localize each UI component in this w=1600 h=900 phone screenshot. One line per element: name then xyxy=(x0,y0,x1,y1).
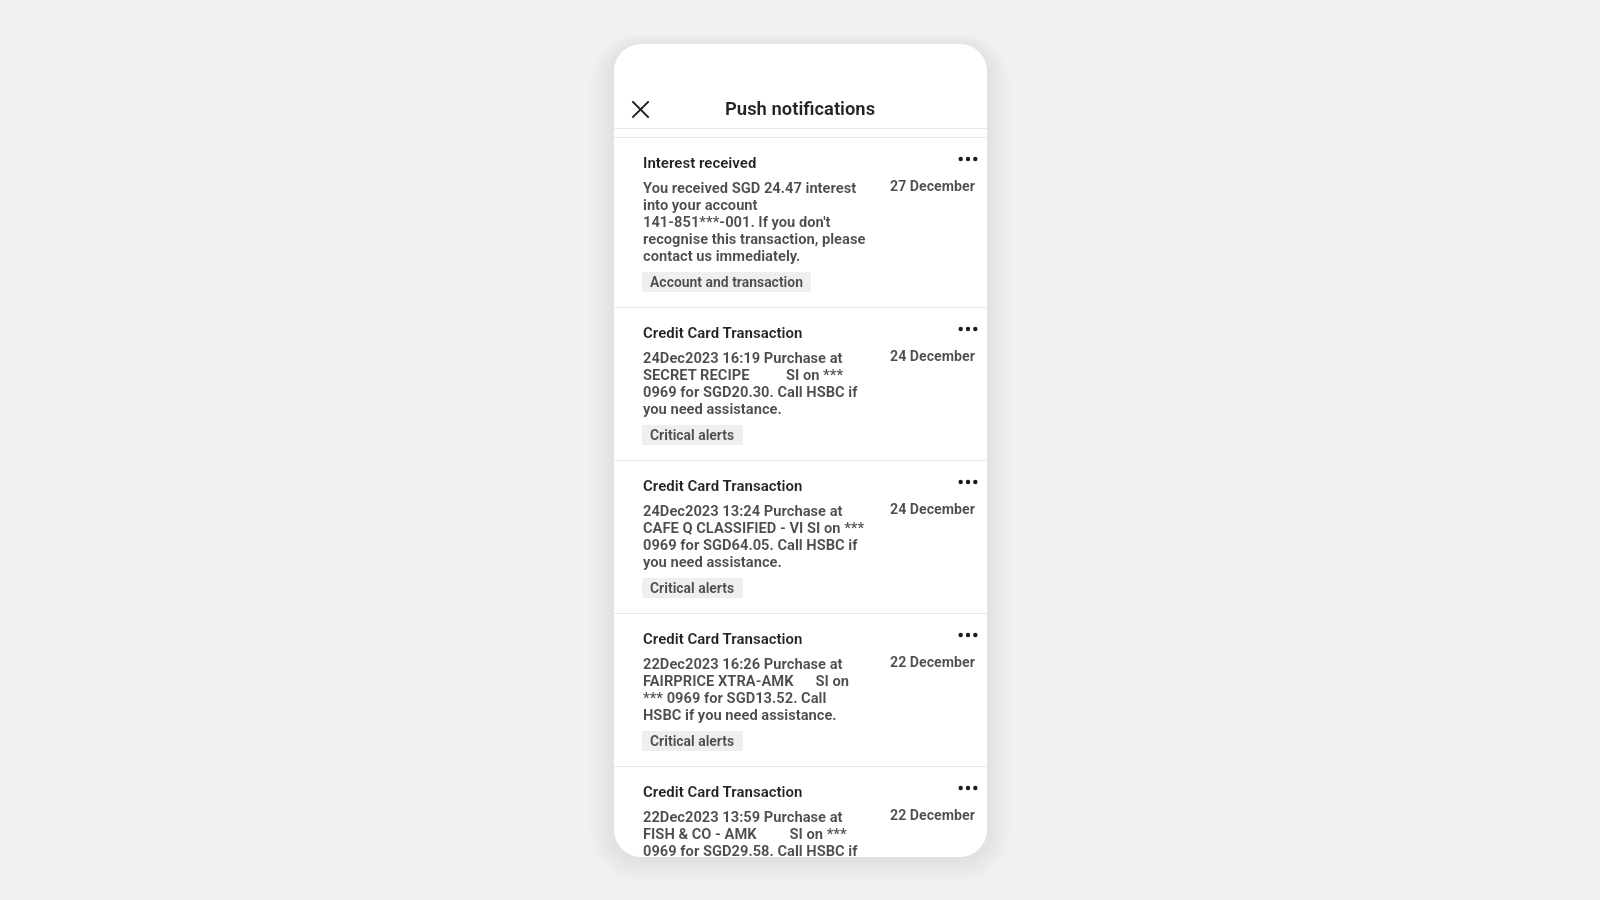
button[interactable]: More options xyxy=(955,775,981,801)
staticText: Interest received xyxy=(643,154,757,172)
button[interactable]: More options xyxy=(955,469,981,495)
button[interactable]: Credit Card Transaction xyxy=(614,308,987,460)
staticText: 24Dec2023 16:19 Purchase at SECRET RECIP… xyxy=(643,349,866,417)
staticText: Account and transaction xyxy=(650,274,803,290)
staticText: 24Dec2023 13:24 Purchase at CAFE Q CLASS… xyxy=(643,502,866,570)
button[interactable]: Interest received xyxy=(614,138,987,307)
staticText: 22Dec2023 16:26 Purchase at FAIRPRICE XT… xyxy=(643,655,866,723)
staticText: Critical alerts xyxy=(650,427,735,443)
button[interactable]: Credit Card Transaction xyxy=(614,767,987,857)
button[interactable]: More options xyxy=(955,146,981,172)
staticText: 22Dec2023 13:59 Purchase at FISH & CO - … xyxy=(643,808,866,857)
staticText: 27 December xyxy=(890,178,975,195)
button[interactable]: Credit Card Transaction xyxy=(614,614,987,766)
staticText: Credit Card Transaction xyxy=(643,477,803,495)
staticText: Credit Card Transaction xyxy=(643,630,803,648)
button[interactable]: Credit Card Transaction xyxy=(614,461,987,613)
staticText: 22 December xyxy=(890,807,975,824)
staticText: Critical alerts xyxy=(650,733,735,749)
button[interactable]: Close xyxy=(622,91,658,127)
staticText: 24 December xyxy=(890,348,975,365)
staticText: 22 December xyxy=(890,654,975,671)
staticText: 24 December xyxy=(890,501,975,518)
button[interactable]: More options xyxy=(955,316,981,342)
button[interactable]: More options xyxy=(955,622,981,648)
staticText: Credit Card Transaction xyxy=(643,783,803,801)
staticText: Push notifications xyxy=(725,98,876,120)
staticText: You received SGD 24.47 interest into you… xyxy=(643,179,866,264)
staticText: Credit Card Transaction xyxy=(643,324,803,342)
staticText: Critical alerts xyxy=(650,580,735,596)
